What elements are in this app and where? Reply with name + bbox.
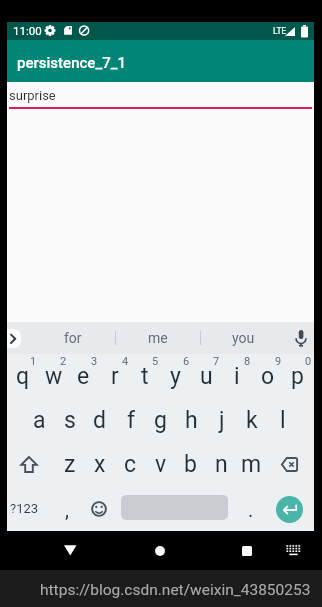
button[interactable]	[295, 330, 307, 347]
button[interactable]: w	[38, 354, 69, 398]
staticText: for	[64, 330, 82, 346]
button[interactable]	[7, 329, 21, 348]
button[interactable]: ?123	[9, 487, 40, 531]
staticText: 3	[91, 355, 98, 368]
staticText: k	[246, 407, 258, 434]
staticText: 8	[244, 355, 251, 368]
staticText: me	[148, 330, 168, 346]
button[interactable]: j	[206, 398, 237, 442]
staticText: persistence_7_1	[17, 54, 126, 72]
staticText: z	[64, 451, 76, 478]
staticText: i	[234, 363, 240, 390]
button[interactable]: b	[175, 442, 206, 486]
button[interactable]: o	[252, 354, 283, 398]
button[interactable]	[276, 496, 303, 523]
staticText: h	[185, 407, 198, 434]
button[interactable]: y	[160, 354, 191, 398]
staticText: w	[45, 363, 63, 390]
button[interactable]: t	[129, 354, 160, 398]
button[interactable]: c	[115, 442, 146, 486]
staticText: LTE	[273, 26, 287, 36]
button[interactable]	[56, 538, 84, 563]
button[interactable]	[7, 442, 51, 486]
staticText: 2	[60, 355, 67, 368]
staticText: e	[77, 363, 90, 390]
button[interactable]	[233, 538, 261, 563]
staticText: o	[261, 363, 275, 390]
staticText: q	[16, 363, 30, 390]
button[interactable]: .	[236, 487, 266, 531]
staticText: r	[111, 363, 119, 390]
staticText: b	[184, 451, 197, 478]
staticText: 6	[183, 355, 190, 368]
button[interactable]: h	[176, 398, 207, 442]
staticText: 4	[122, 355, 129, 368]
button[interactable]	[279, 538, 307, 563]
staticText: y	[170, 363, 181, 390]
button[interactable]	[146, 538, 174, 563]
staticText: n	[215, 451, 228, 478]
staticText: v	[155, 451, 167, 478]
button[interactable]: surprise	[8, 82, 313, 106]
button[interactable]: q	[7, 354, 38, 398]
staticText: x	[94, 451, 106, 478]
button[interactable]: i	[221, 354, 252, 398]
button[interactable]: v	[145, 442, 176, 486]
staticText: ?123	[10, 501, 39, 516]
staticText: a	[33, 407, 46, 434]
button[interactable]: l	[267, 398, 298, 442]
staticText: c	[124, 451, 137, 478]
button[interactable]: z	[54, 442, 85, 486]
staticText: l	[280, 407, 286, 434]
staticText: you	[232, 330, 255, 346]
staticText: 7	[213, 355, 220, 368]
button[interactable]: f	[115, 398, 146, 442]
button[interactable]: u	[191, 354, 222, 398]
button[interactable]: d	[84, 398, 115, 442]
button[interactable]: s	[54, 398, 85, 442]
staticText: 11:00	[13, 24, 42, 37]
button[interactable]: a	[24, 398, 55, 442]
button[interactable]: n	[206, 442, 237, 486]
staticText: 5	[152, 355, 159, 368]
button[interactable]: p	[282, 354, 313, 398]
staticText: s	[64, 407, 76, 434]
staticText: p	[291, 363, 304, 390]
button[interactable]: ,	[52, 487, 82, 531]
staticText: m	[241, 451, 262, 478]
staticText: 9	[275, 355, 282, 368]
staticText: ,	[65, 498, 69, 521]
staticText: .	[248, 498, 254, 521]
staticText: surprise	[9, 88, 56, 103]
staticText: 1	[30, 355, 37, 368]
staticText: https://blog.csdn.net/weixin_43850253	[40, 581, 311, 599]
staticText: t	[141, 363, 149, 390]
staticText: g	[154, 407, 167, 434]
button[interactable]: x	[84, 442, 115, 486]
button[interactable]: for	[43, 322, 103, 354]
button[interactable]: e	[68, 354, 99, 398]
button[interactable]	[275, 442, 305, 486]
button[interactable]: r	[99, 354, 130, 398]
button[interactable]: g	[145, 398, 176, 442]
staticText: 0	[305, 355, 312, 368]
button[interactable]: me	[128, 322, 188, 354]
staticText: d	[93, 407, 106, 434]
staticText: j	[219, 407, 225, 434]
button[interactable]: k	[236, 398, 267, 442]
button[interactable]: m	[236, 442, 267, 486]
staticText: u	[200, 363, 213, 390]
button[interactable]: you	[213, 322, 273, 354]
staticText: f	[127, 407, 135, 434]
button[interactable]	[84, 487, 114, 531]
